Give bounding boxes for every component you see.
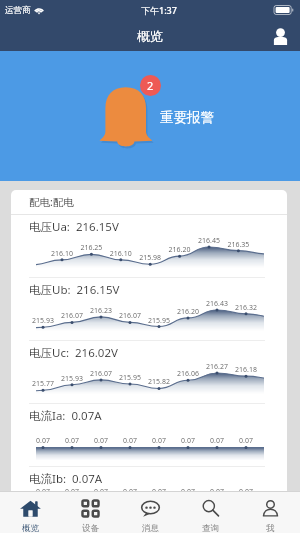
staticText: 我 <box>266 523 275 533</box>
button[interactable]: 概览 <box>0 492 60 533</box>
staticText: 电压Uc: 216.02V <box>29 345 118 361</box>
staticText: 2 <box>147 78 154 93</box>
button[interactable]: 消息 <box>120 492 180 533</box>
staticText: 电压Ua: 216.15V <box>29 219 119 235</box>
staticText: 设备 <box>82 523 99 533</box>
button[interactable]: 设备 <box>60 492 120 533</box>
button[interactable]: Important alarms <box>95 84 157 154</box>
staticText: 电流Ib: 0.07A <box>29 471 103 487</box>
staticText: 电压Ub: 216.15V <box>29 282 120 298</box>
staticText: 概览 <box>22 523 39 533</box>
button[interactable]: 我 <box>240 492 300 533</box>
staticText: 运营商 <box>5 5 31 16</box>
staticText: 电流Ia: 0.07A <box>29 408 102 424</box>
button[interactable]: Account <box>269 25 291 47</box>
staticText: 下午1:37 <box>141 4 177 16</box>
staticText: 配电:配电 <box>29 195 74 209</box>
staticText: 查询 <box>202 523 219 533</box>
staticText: 消息 <box>142 523 159 533</box>
staticText: 重要报警 <box>160 109 214 126</box>
staticText: 概览 <box>137 28 163 44</box>
button[interactable]: 查询 <box>180 492 240 533</box>
